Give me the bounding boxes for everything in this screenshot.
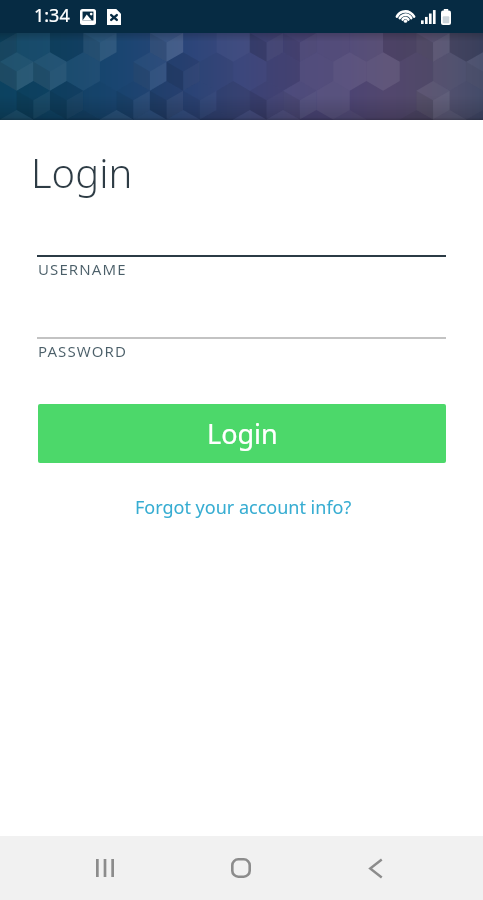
button[interactable]: Forgot your account info? — [135, 495, 352, 520]
button[interactable]: Home — [206, 836, 276, 900]
staticText: PASSWORD — [38, 341, 127, 361]
staticText: USERNAME — [38, 259, 127, 279]
button[interactable]: Login — [38, 404, 446, 463]
staticText: Login — [31, 145, 133, 199]
staticText: Login — [207, 415, 278, 452]
staticText: 1:34 — [34, 3, 70, 28]
button[interactable]: Back — [340, 836, 410, 900]
staticText: Forgot your account info? — [135, 495, 352, 520]
button[interactable]: Recent apps — [70, 836, 140, 900]
